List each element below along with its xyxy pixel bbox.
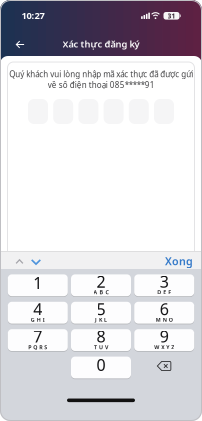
staticText: Xong bbox=[165, 254, 193, 268]
staticText: M N O bbox=[156, 316, 173, 323]
button[interactable]: Back bbox=[11, 36, 28, 52]
button[interactable]: 4 bbox=[8, 302, 68, 324]
staticText: 7 bbox=[33, 326, 42, 347]
staticText: 6 bbox=[160, 298, 169, 320]
button[interactable]: Next field bbox=[28, 256, 44, 268]
staticText: 0 bbox=[96, 354, 105, 375]
button[interactable]: 9 bbox=[134, 329, 194, 351]
staticText: 5 bbox=[96, 298, 105, 320]
button[interactable]: 8 bbox=[71, 329, 131, 351]
button[interactable]: 6 bbox=[134, 302, 194, 324]
button[interactable]: Mã xác thực bbox=[28, 99, 174, 124]
button[interactable]: Xong bbox=[162, 251, 196, 271]
staticText: W X Y Z bbox=[154, 344, 174, 351]
staticText: Xác thực đăng ký bbox=[62, 38, 139, 50]
button[interactable]: Delete bbox=[153, 357, 175, 375]
staticText: D E F bbox=[157, 289, 171, 296]
button[interactable]: 1 bbox=[8, 274, 68, 296]
button[interactable]: 7 bbox=[8, 329, 68, 351]
staticText: 1 bbox=[33, 272, 42, 293]
button[interactable]: 0 bbox=[71, 357, 131, 378]
staticText: T U V bbox=[94, 344, 108, 351]
staticText: 31 bbox=[167, 11, 175, 20]
button[interactable]: Previous field bbox=[12, 256, 26, 267]
button[interactable]: 5 bbox=[71, 302, 131, 324]
staticText: 8 bbox=[96, 326, 105, 347]
staticText: A B C bbox=[93, 289, 108, 296]
button[interactable]: 2 bbox=[71, 274, 131, 296]
staticText: 3 bbox=[160, 271, 169, 292]
staticText: P Q R S bbox=[28, 344, 47, 351]
staticText: Quý khách vui lòng nhập mã xác thực đã đ… bbox=[9, 69, 193, 90]
staticText: G H I bbox=[31, 316, 45, 323]
staticText: J K L bbox=[95, 316, 107, 323]
button[interactable]: 3 bbox=[134, 274, 194, 296]
staticText: 4 bbox=[33, 298, 42, 320]
staticText: 9 bbox=[160, 326, 169, 347]
staticText: 10:27 bbox=[21, 9, 44, 22]
staticText: 2 bbox=[96, 271, 105, 292]
